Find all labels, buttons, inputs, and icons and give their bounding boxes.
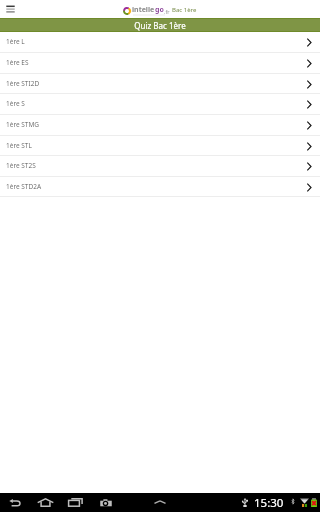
button[interactable]: Screenshot: [96, 493, 116, 512]
button[interactable]: Menu: [0, 0, 21, 18]
staticText: Quiz Bac 1ère: [134, 20, 186, 31]
button[interactable]: Back: [5, 493, 26, 512]
staticText: 1ère ES: [6, 58, 29, 67]
button[interactable]: 1ère ST2S: [0, 156, 320, 177]
staticText: 1ère STI2D: [6, 79, 40, 88]
staticText: go: [155, 5, 164, 15]
staticText: 1ère STD2A: [6, 182, 42, 191]
staticText: intelle: [132, 5, 155, 15]
staticText: 1ère ST2S: [6, 161, 36, 170]
button[interactable]: 1ère STMG: [0, 115, 320, 136]
button[interactable]: 1ère S: [0, 94, 320, 115]
staticText: 1ère S: [6, 99, 25, 108]
staticText: 15:30: [254, 495, 284, 511]
button[interactable]: 1ère ES: [0, 53, 320, 74]
button[interactable]: 1ère STL: [0, 136, 320, 156]
button[interactable]: Recent apps: [64, 493, 87, 512]
button[interactable]: Expand: [150, 493, 170, 512]
button[interactable]: 1ère STI2D: [0, 74, 320, 94]
staticText: .fr: [164, 8, 170, 15]
staticText: 1ère STL: [6, 141, 32, 150]
staticText: Bac 1ère: [172, 6, 197, 14]
button[interactable]: Home: [33, 493, 58, 512]
staticText: 1ère STMG: [6, 120, 40, 129]
button[interactable]: 1ère STD2A: [0, 177, 320, 197]
staticText: 1ère L: [6, 37, 25, 46]
button[interactable]: 1ère L: [0, 32, 320, 53]
